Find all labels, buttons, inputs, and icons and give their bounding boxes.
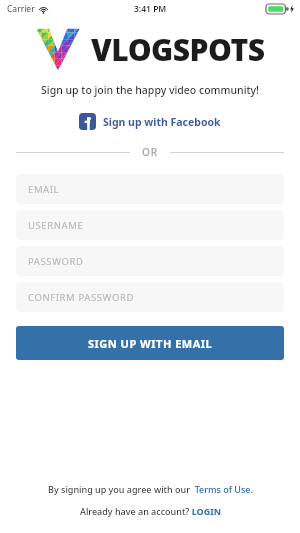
staticText: CONFIRM PASSWORD — [28, 291, 134, 304]
staticText: USERNAME — [28, 219, 84, 232]
button[interactable]: Sign up with Facebook — [73, 110, 227, 133]
staticText: VLOGSPOTS — [91, 29, 265, 70]
staticText: 3:41 PM — [134, 3, 167, 15]
button[interactable]: Already have an account? LOGIN — [76, 503, 225, 519]
staticText: Sign up with Facebook — [103, 115, 221, 129]
button[interactable]: USERNAME — [16, 210, 284, 240]
staticText: Already have an account? LOGIN — [80, 505, 221, 517]
button[interactable]: CONFIRM PASSWORD — [16, 282, 284, 312]
staticText: PASSWORD — [28, 255, 84, 268]
staticText: SIGN UP WITH EMAIL — [88, 336, 213, 351]
button[interactable]: SIGN UP WITH EMAIL — [16, 326, 284, 360]
staticText: OR — [142, 145, 158, 159]
button[interactable]: PASSWORD — [16, 246, 284, 276]
staticText: By signing up you agree with our Terms o… — [48, 483, 253, 495]
staticText: Sign up to join the happy video communit… — [0, 83, 300, 97]
button[interactable]: EMAIL — [16, 174, 284, 204]
staticText: EMAIL — [28, 183, 60, 196]
button[interactable]: By signing up you agree with our Terms o… — [44, 481, 257, 497]
staticText: Carrier — [7, 3, 35, 15]
